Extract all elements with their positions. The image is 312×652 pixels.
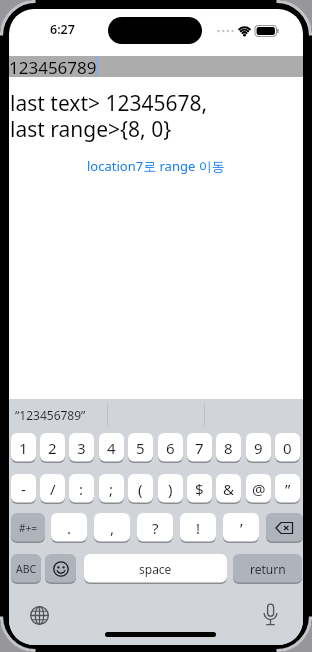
staticText: &: [223, 479, 234, 499]
button[interactable]: 9: [246, 433, 271, 463]
button[interactable]: 5: [128, 433, 153, 463]
button[interactable]: 4: [99, 433, 124, 463]
staticText: -: [21, 479, 26, 499]
staticText: 5: [136, 438, 145, 458]
button[interactable]: 1: [11, 433, 36, 463]
button[interactable]: /: [40, 474, 65, 504]
button[interactable]: 123456789: [9, 56, 303, 77]
button[interactable]: ’: [223, 513, 259, 543]
staticText: 9: [254, 438, 263, 458]
staticText: ): [168, 479, 173, 499]
button[interactable]: ): [158, 474, 183, 504]
staticText: 7: [195, 438, 204, 458]
button[interactable]: ABC: [11, 554, 41, 584]
button[interactable]: @: [246, 474, 271, 504]
staticText: space: [139, 561, 172, 577]
button[interactable]: [261, 603, 280, 627]
staticText: 2: [48, 438, 57, 458]
button[interactable]: ?: [137, 513, 173, 543]
staticText: 4: [107, 438, 116, 458]
staticText: @: [252, 479, 266, 499]
staticText: !: [196, 518, 201, 538]
button[interactable]: [45, 554, 76, 584]
button[interactable]: 3: [69, 433, 94, 463]
staticText: return: [250, 561, 286, 577]
button[interactable]: ,: [94, 513, 130, 543]
button[interactable]: $: [187, 474, 212, 504]
button[interactable]: return: [233, 554, 302, 584]
staticText: ’: [240, 518, 243, 538]
button[interactable]: space: [84, 554, 227, 584]
staticText: ”: [285, 479, 291, 499]
staticText: .: [67, 518, 72, 538]
button[interactable]: !: [180, 513, 216, 543]
button[interactable]: :: [69, 474, 94, 504]
staticText: last text> 12345678, last range>{8, 0}: [10, 89, 208, 143]
button[interactable]: -: [11, 474, 36, 504]
staticText: ;: [109, 479, 114, 499]
staticText: 1: [19, 438, 28, 458]
button[interactable]: 7: [187, 433, 212, 463]
staticText: location7로 range 이동: [87, 157, 225, 175]
staticText: ABC: [16, 562, 37, 576]
button[interactable]: [266, 513, 303, 543]
button[interactable]: &: [216, 474, 241, 504]
button[interactable]: #+=: [11, 513, 45, 543]
staticText: /: [50, 479, 56, 499]
staticText: 8: [224, 438, 233, 458]
button[interactable]: (: [128, 474, 153, 504]
staticText: 123456789: [9, 56, 97, 77]
button[interactable]: 8: [216, 433, 241, 463]
staticText: ?: [152, 518, 159, 538]
staticText: 6: [166, 438, 175, 458]
staticText: $: [195, 479, 204, 499]
staticText: “123456789”: [15, 407, 86, 423]
button[interactable]: 0: [275, 433, 300, 463]
staticText: 0: [283, 438, 292, 458]
button[interactable]: location7로 range 이동: [9, 157, 303, 175]
staticText: #+=: [19, 521, 37, 535]
staticText: 3: [77, 438, 86, 458]
button[interactable]: “123456789”: [15, 399, 107, 431]
staticText: (: [138, 479, 143, 499]
staticText: 6:27: [50, 21, 75, 38]
button[interactable]: [29, 605, 50, 626]
staticText: ,: [110, 518, 115, 538]
button[interactable]: 2: [40, 433, 65, 463]
button[interactable]: ;: [99, 474, 124, 504]
button[interactable]: ”: [275, 474, 300, 504]
staticText: :: [79, 479, 84, 499]
button[interactable]: 6: [158, 433, 183, 463]
button[interactable]: .: [51, 513, 87, 543]
